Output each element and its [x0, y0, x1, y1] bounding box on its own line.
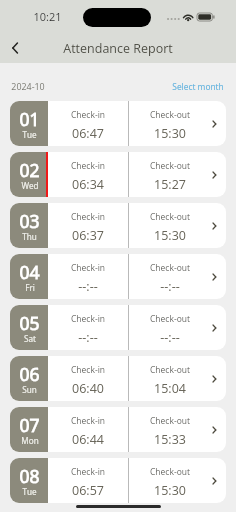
other: Details	[210, 425, 220, 435]
staticText: 06:47	[72, 125, 104, 142]
button[interactable]: 03	[10, 203, 226, 248]
other: Details	[210, 476, 220, 486]
staticText: Check-out	[150, 364, 190, 376]
staticText: Check-out	[150, 109, 190, 121]
staticText: 06:57	[72, 482, 104, 499]
staticText: --:--	[78, 329, 98, 346]
staticText: 06:34	[72, 176, 104, 193]
staticText: 2024-10	[11, 80, 45, 92]
staticText: 15:04	[154, 380, 186, 397]
staticText: 15:30	[154, 482, 186, 499]
button[interactable]: Select month	[160, 77, 236, 96]
staticText: Attendance Report	[63, 40, 173, 57]
staticText: 04	[19, 260, 40, 284]
button[interactable]: 05	[10, 305, 226, 350]
other: Details	[210, 119, 220, 129]
button[interactable]: Back	[2, 34, 30, 62]
staticText: Check-out	[150, 313, 190, 325]
staticText: 15:27	[154, 176, 186, 193]
staticText: 03	[19, 209, 40, 233]
staticText: 02	[19, 158, 40, 182]
staticText: Check-in	[71, 262, 105, 274]
button[interactable]: 07	[10, 407, 226, 452]
other: Details	[210, 221, 220, 231]
staticText: 15:33	[154, 431, 186, 448]
button[interactable]: 04	[10, 254, 226, 299]
staticText: Select month	[172, 81, 224, 92]
staticText: Check-in	[71, 364, 105, 376]
button[interactable]: 06	[10, 356, 226, 401]
staticText: --:--	[160, 329, 180, 346]
staticText: Check-in	[71, 466, 105, 478]
button[interactable]: 08	[10, 458, 226, 503]
staticText: 06:40	[72, 380, 104, 397]
staticText: Check-out	[150, 415, 190, 427]
staticText: Check-in	[71, 415, 105, 427]
staticText: 08	[19, 464, 40, 488]
staticText: Check-out	[150, 211, 190, 223]
other: Details	[210, 170, 220, 180]
staticText: Wed	[21, 180, 39, 191]
staticText: 05	[19, 311, 40, 335]
staticText: Fri	[25, 282, 35, 293]
staticText: 10:21	[33, 9, 62, 24]
staticText: 15:30	[154, 227, 186, 244]
button[interactable]: 01	[10, 101, 226, 146]
staticText: 06	[19, 362, 40, 386]
other: Details	[210, 272, 220, 282]
other: Details	[210, 374, 220, 384]
staticText: Check-in	[71, 160, 105, 172]
staticText: 01	[19, 107, 40, 131]
staticText: 15:30	[154, 125, 186, 142]
other: Details	[210, 323, 220, 333]
staticText: Sat	[24, 333, 36, 344]
staticText: 06:44	[72, 431, 104, 448]
button[interactable]: 02	[10, 152, 226, 197]
staticText: Check-out	[150, 160, 190, 172]
staticText: --:--	[160, 278, 180, 295]
staticText: Thu	[22, 231, 37, 242]
staticText: Check-in	[71, 313, 105, 325]
staticText: Sun	[22, 384, 37, 395]
staticText: --:--	[78, 278, 98, 295]
staticText: Check-in	[71, 211, 105, 223]
staticText: Mon	[21, 435, 39, 446]
staticText: Check-out	[150, 262, 190, 274]
staticText: 06:37	[72, 227, 104, 244]
staticText: Check-out	[150, 466, 190, 478]
staticText: Tue	[22, 486, 37, 497]
staticText: Tue	[22, 129, 37, 140]
staticText: 07	[19, 413, 40, 437]
staticText: Check-in	[71, 109, 105, 121]
